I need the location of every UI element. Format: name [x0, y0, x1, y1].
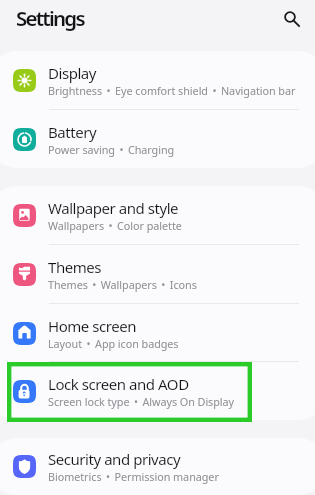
- staticText: Screen lock type • Always On Display: [48, 394, 235, 409]
- staticText: Themes • Wallpapers • Icons: [48, 277, 197, 292]
- button[interactable]: Wallpaper and style: [0, 186, 315, 245]
- staticText: Settings: [16, 4, 84, 32]
- staticText: Power saving • Charging: [48, 142, 175, 157]
- staticText: Lock screen and AOD: [48, 374, 189, 394]
- staticText: Wallpaper and style: [48, 198, 179, 218]
- staticText: Brightness • Eye comfort shield • Naviga…: [48, 83, 296, 98]
- staticText: Battery: [48, 122, 97, 142]
- staticText: Wallpapers • Color palette: [48, 218, 182, 233]
- button[interactable]: Themes: [0, 245, 315, 304]
- button[interactable]: Search: [273, 0, 307, 34]
- staticText: Biometrics • Permission manager: [48, 469, 219, 484]
- button[interactable]: Home screen: [0, 304, 315, 362]
- staticText: Themes: [48, 257, 102, 277]
- button[interactable]: Security and privacy: [0, 438, 315, 495]
- button[interactable]: Battery: [0, 110, 315, 168]
- button[interactable]: Display: [0, 51, 315, 110]
- staticText: Security and privacy: [48, 449, 181, 469]
- staticText: Display: [48, 63, 97, 83]
- staticText: Layout • App icon badges: [48, 336, 179, 351]
- button[interactable]: Lock screen and AOD: [0, 362, 315, 420]
- staticText: Home screen: [48, 316, 137, 336]
